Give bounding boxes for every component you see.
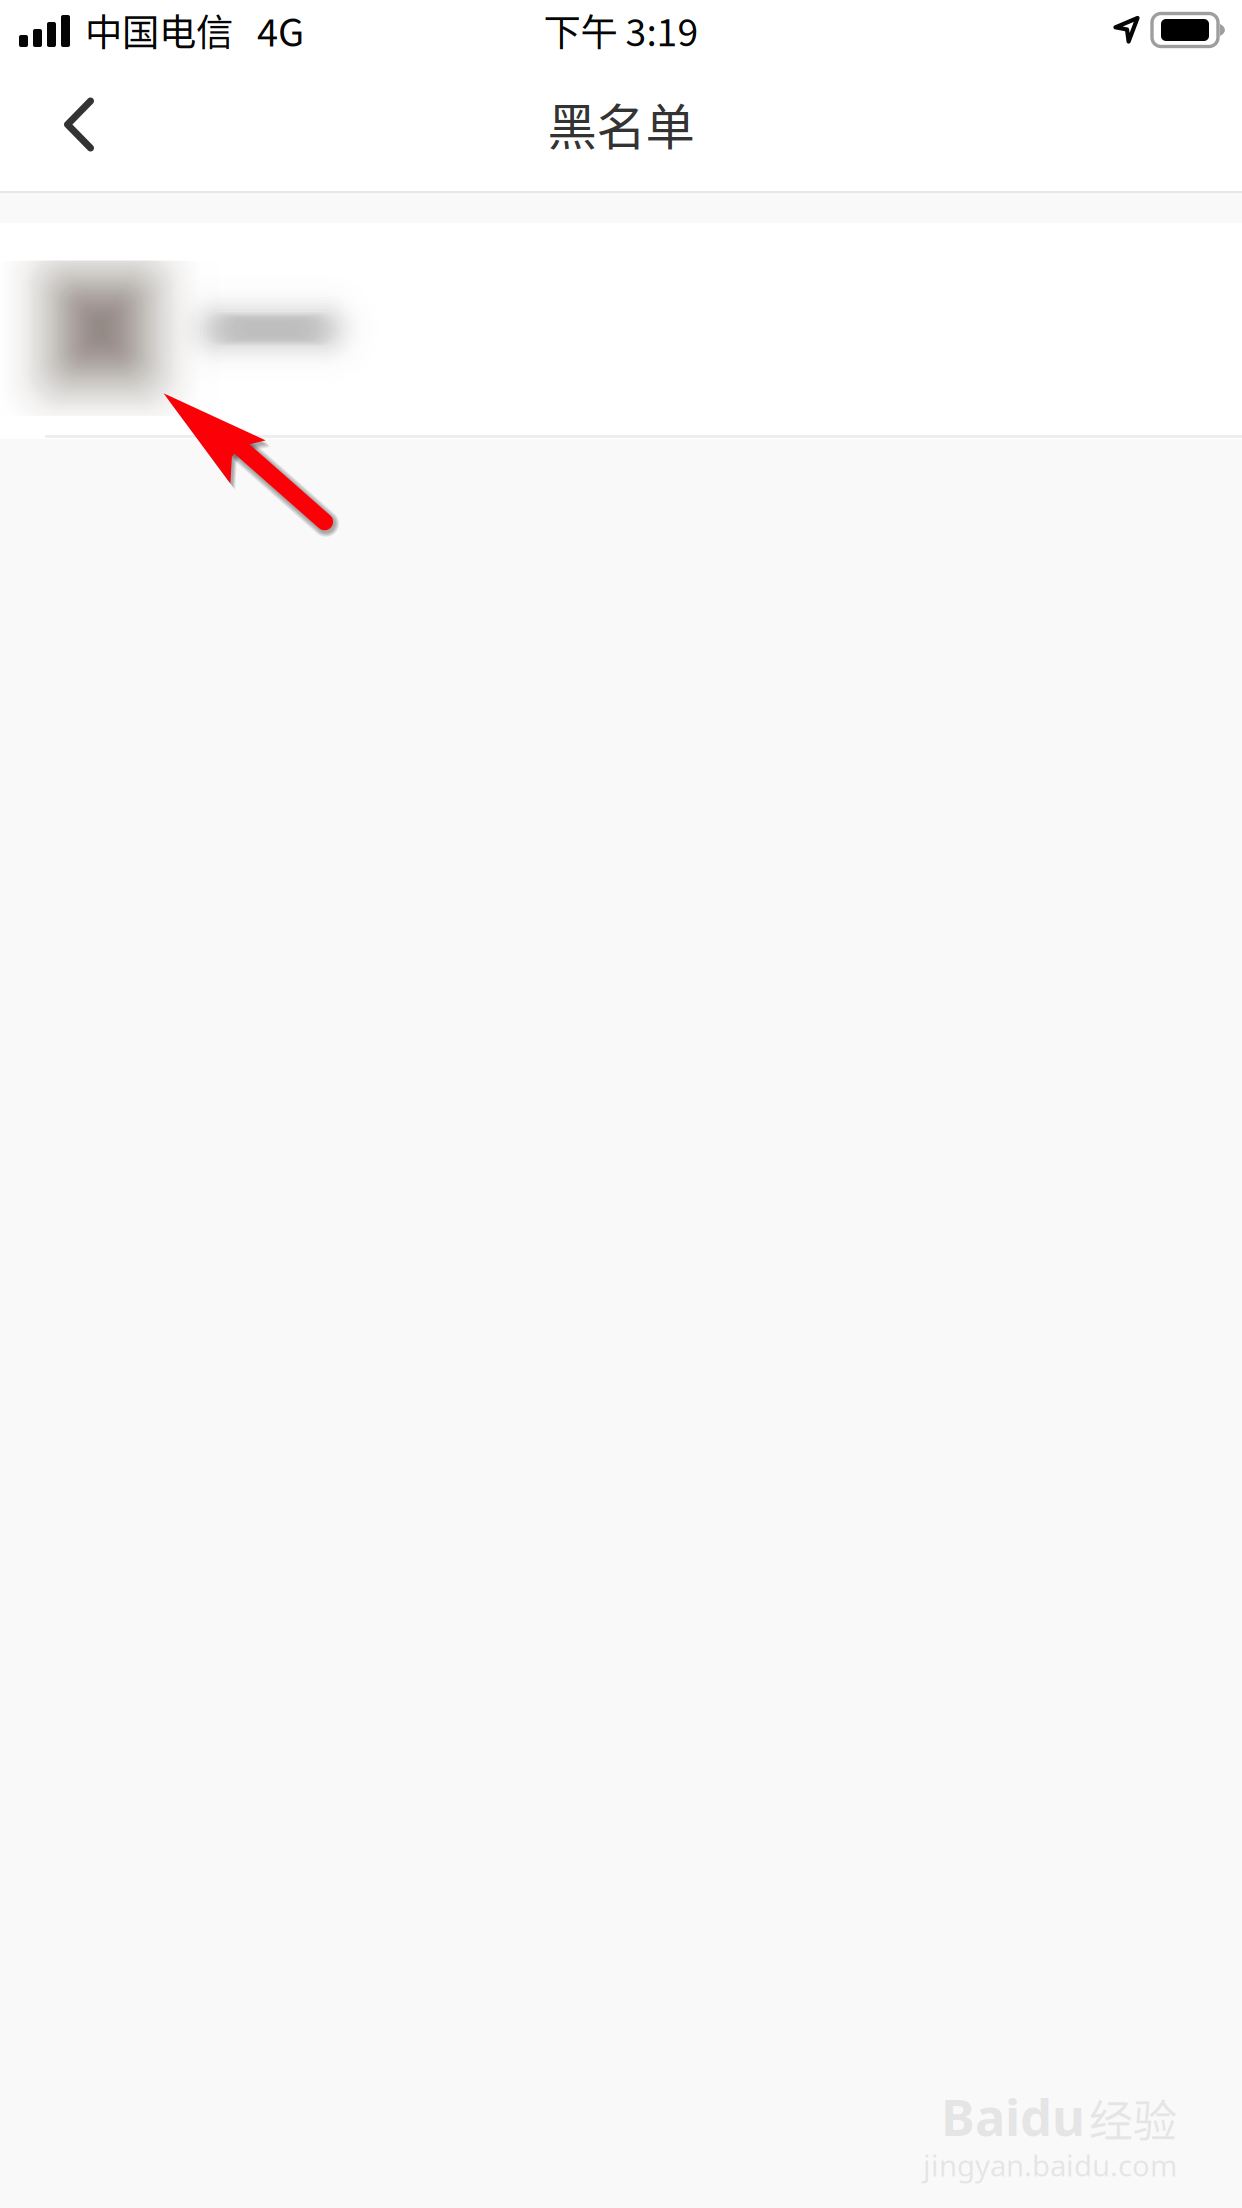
staticText: 4G <box>257 2 304 57</box>
staticText: 黑名单 <box>547 88 694 159</box>
staticText: 经验 <box>1089 2086 1177 2150</box>
button[interactable]: Back <box>30 70 128 191</box>
staticText: jingyan.baidu.com <box>923 2145 1177 2184</box>
button[interactable] <box>0 223 1242 435</box>
staticText: 下午 3:19 <box>543 3 698 57</box>
staticText: Baidu <box>941 2083 1085 2150</box>
staticText: 中国电信 <box>85 3 233 57</box>
